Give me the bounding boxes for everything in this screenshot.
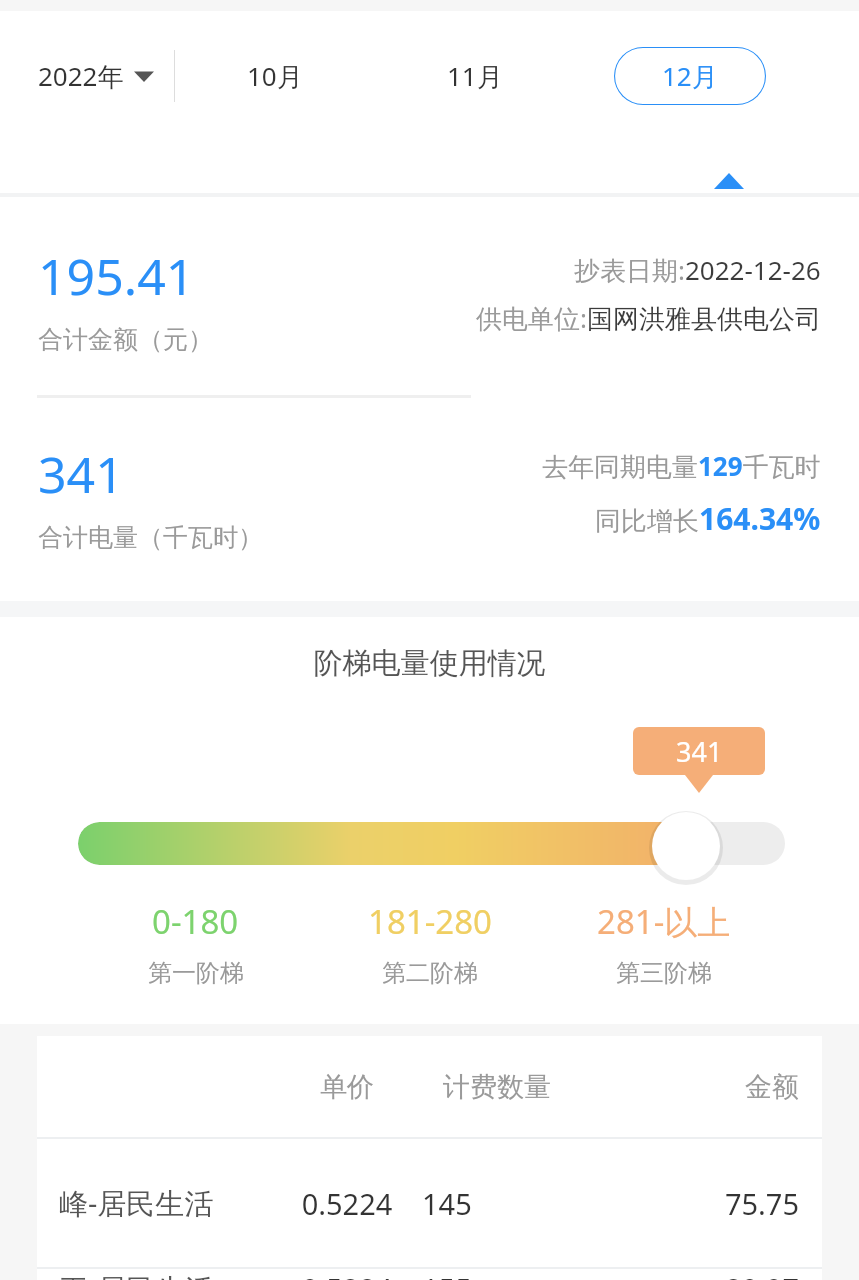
button[interactable]: 平-居民生活 <box>37 1269 822 1280</box>
staticText: 抄表日期:2022-12-26 <box>574 252 821 288</box>
button[interactable] <box>78 822 785 865</box>
staticText: 0.5224 <box>287 1269 407 1280</box>
staticText: 合计金额（元） <box>38 324 213 355</box>
staticText: 平-居民生活 <box>59 1269 287 1280</box>
button[interactable]: 11月 <box>435 46 515 106</box>
staticText: 341 <box>38 440 124 508</box>
staticText: 第三阶梯 <box>616 958 712 988</box>
staticText: 金额 <box>689 1070 799 1104</box>
staticText: 计费数量 <box>422 1070 572 1104</box>
button[interactable]: 2022年 <box>38 50 154 102</box>
staticText: 0-180 <box>152 899 239 944</box>
staticText: 峰-居民生活 <box>59 1183 287 1223</box>
button[interactable]: 10月 <box>235 46 315 106</box>
staticText: 去年同期电量129千瓦时 <box>542 448 821 484</box>
staticText: 155 <box>422 1269 572 1280</box>
staticText: 单价 <box>287 1070 407 1104</box>
staticText: 181-280 <box>368 899 492 944</box>
staticText: 2022年 <box>38 58 124 94</box>
staticText: 75.75 <box>669 1184 799 1223</box>
staticText: 阶梯电量使用情况 <box>0 645 859 682</box>
staticText: 第一阶梯 <box>148 958 244 988</box>
staticText: 145 <box>422 1184 572 1223</box>
staticText: 12月 <box>662 58 718 94</box>
staticText: 0.5224 <box>287 1184 407 1223</box>
staticText: 供电单位:国网洪雅县供电公司 <box>476 300 821 336</box>
staticText: 同比增长164.34% <box>595 498 821 539</box>
staticText: 195.41 <box>38 242 195 310</box>
button[interactable]: 峰-居民生活 <box>37 1139 822 1267</box>
staticText: 80.97 <box>669 1269 799 1280</box>
staticText: 341 <box>676 733 723 770</box>
staticText: 合计电量（千瓦时） <box>38 522 263 553</box>
staticText: 281-以上 <box>597 899 731 944</box>
button[interactable]: 12月 <box>614 47 766 105</box>
staticText: 第二阶梯 <box>382 958 478 988</box>
